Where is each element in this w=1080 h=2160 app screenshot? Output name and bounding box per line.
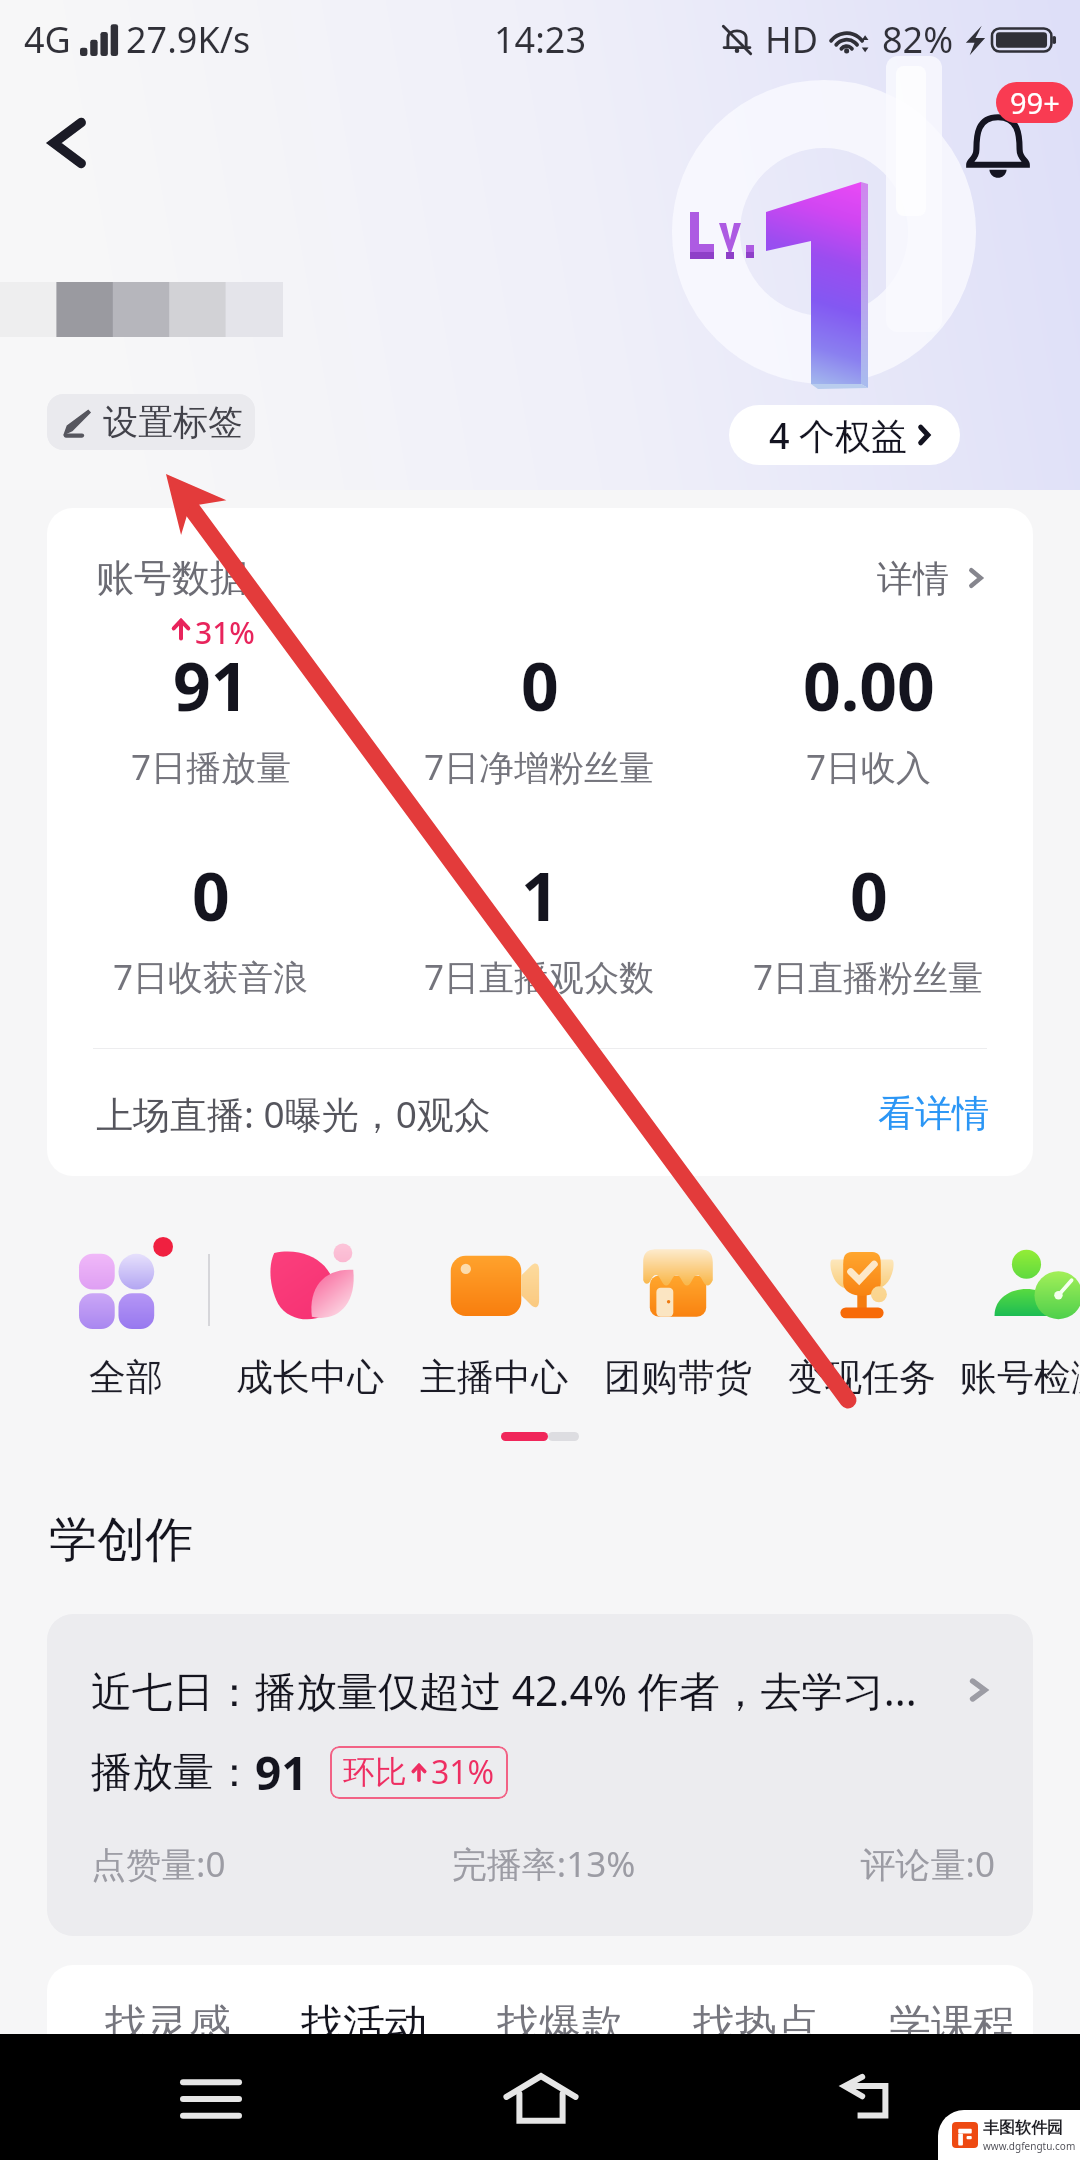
staticText: 4G xyxy=(24,15,71,64)
staticText: 播放量： xyxy=(91,1747,255,1799)
staticText: 7日播放量 xyxy=(131,743,292,791)
button[interactable]: 账号数据 xyxy=(47,508,1033,606)
button[interactable]: 账号检测 xyxy=(954,1236,1080,1401)
staticText: 详情 xyxy=(877,556,949,601)
staticText: 评论量:0 xyxy=(694,1840,995,1888)
staticText: 变现任务 xyxy=(788,1354,936,1401)
staticText: 1 xyxy=(521,850,559,940)
button[interactable]: Home xyxy=(481,2039,601,2159)
staticText: 7日直播观众数 xyxy=(424,953,655,1001)
button[interactable]: Back xyxy=(808,2039,928,2159)
staticText: 环比 xyxy=(343,1752,407,1792)
staticText: 99+ xyxy=(1010,83,1060,122)
staticText: 近七日：播放量仅超过 42.4% 作者，去学习... xyxy=(91,1662,963,1718)
staticText: 团购带货 xyxy=(604,1354,752,1401)
button[interactable]: Recents xyxy=(151,2039,271,2159)
button[interactable]: 主播中心 xyxy=(402,1236,586,1401)
staticText: 7日净增粉丝量 xyxy=(424,743,655,791)
staticText: 0.00 xyxy=(803,640,935,730)
staticText: 账号数据 xyxy=(96,554,248,602)
staticText: 7日直播粉丝量 xyxy=(753,953,984,1001)
button[interactable]: 上场直播: 0曝光，0观众 xyxy=(47,1049,1033,1176)
staticText: 找爆款 xyxy=(497,1999,623,2052)
staticText: 丰图软件园 xyxy=(983,2118,1063,2138)
staticText: 设置标签 xyxy=(103,400,243,444)
button[interactable]: 变现任务 xyxy=(770,1236,954,1401)
staticText: 全部 xyxy=(89,1354,163,1401)
button[interactable]: 设置标签 xyxy=(47,394,255,450)
staticText: 91 xyxy=(173,640,249,730)
button[interactable]: 团购带货 xyxy=(586,1236,770,1401)
staticText: 找活动 xyxy=(301,1999,427,2052)
button[interactable]: 0 xyxy=(704,816,1033,1001)
staticText: 账号检测 xyxy=(960,1354,1080,1401)
staticText: 91 xyxy=(255,1741,308,1804)
button[interactable]: Notifications xyxy=(962,110,1034,182)
staticText: 完播率:13% xyxy=(393,1840,694,1888)
staticText: 0 xyxy=(521,640,559,730)
button[interactable]: 0.00 xyxy=(704,606,1033,791)
staticText: 82% xyxy=(882,15,954,64)
staticText: 找热点 xyxy=(693,1999,819,2052)
staticText: 14:23 xyxy=(494,15,587,64)
button[interactable]: 31% xyxy=(47,606,375,791)
staticText: www.dgfengtu.com xyxy=(983,2139,1076,2153)
button[interactable]: 成长中心 xyxy=(218,1236,402,1401)
staticText: 成长中心 xyxy=(236,1354,384,1401)
staticText: HD xyxy=(765,15,818,64)
staticText: 27.9K/s xyxy=(126,15,251,64)
staticText: 学课程 xyxy=(889,1999,1015,2052)
button[interactable]: Back xyxy=(28,105,104,181)
button[interactable]: 1 xyxy=(375,816,704,1001)
staticText: 31% xyxy=(431,1750,495,1794)
button[interactable]: 99+ unread xyxy=(996,82,1073,123)
staticText: 31% xyxy=(195,612,255,646)
staticText: 7日收获音浪 xyxy=(113,953,309,1001)
staticText: 0 xyxy=(192,850,230,940)
button[interactable]: 4 个权益 xyxy=(729,405,960,465)
staticText: 7日收入 xyxy=(806,743,932,791)
staticText: 0 xyxy=(850,850,888,940)
button[interactable]: 全部 xyxy=(34,1236,218,1401)
button[interactable]: 0 xyxy=(375,606,704,791)
staticText: 点赞量:0 xyxy=(91,1840,393,1888)
staticText: 学创作 xyxy=(49,1510,193,1570)
staticText: 4 个权益 xyxy=(769,411,907,460)
button[interactable]: 0 xyxy=(47,816,375,1001)
staticText: 主播中心 xyxy=(420,1354,568,1401)
staticText: 找灵感 xyxy=(105,1999,231,2052)
staticText: 上场直播: 0曝光，0观众 xyxy=(96,1088,491,1139)
staticText: 看详情 xyxy=(878,1090,989,1137)
button[interactable]: 近七日：播放量仅超过 42.4% 作者，去学习... xyxy=(47,1614,1033,1936)
